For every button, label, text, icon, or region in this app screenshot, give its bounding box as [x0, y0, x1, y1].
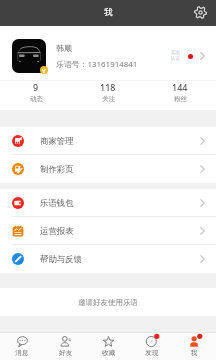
button[interactable]: 好友	[44, 332, 87, 360]
staticText: 帮助与反馈	[40, 254, 82, 265]
staticText: 制作彩页	[40, 164, 74, 175]
staticText: 9	[33, 81, 39, 93]
staticText: 实名	[171, 50, 181, 56]
staticText: 邀请好友使用乐语	[78, 298, 138, 307]
button[interactable]: V	[0, 26, 216, 80]
staticText: V	[42, 67, 46, 74]
staticText: 粉丝	[174, 95, 187, 103]
staticText: 118	[100, 81, 116, 93]
staticText: 144	[172, 81, 188, 93]
button[interactable]: 运营报表	[0, 217, 216, 245]
button[interactable]: 帮助与反馈	[0, 245, 216, 273]
staticText: 认证	[171, 56, 181, 62]
button[interactable]: 乐语钱包	[0, 189, 216, 217]
staticText: 发现	[145, 349, 159, 357]
staticText: 韩顺	[56, 43, 72, 53]
button[interactable]: 144	[144, 81, 216, 110]
button[interactable]: 邀请好友使用乐语	[0, 288, 216, 316]
button[interactable]: 消息	[0, 332, 44, 360]
staticText: 收藏	[102, 349, 116, 357]
button[interactable]: 118	[72, 81, 144, 110]
staticText: 消息	[15, 349, 29, 357]
staticText: 好友	[59, 349, 73, 357]
button[interactable]: 我	[173, 332, 216, 360]
staticText: 动态	[30, 95, 43, 103]
staticText: 商家管理	[40, 136, 74, 147]
staticText: 乐语号：13161914841	[56, 59, 138, 70]
button[interactable]: 发现	[130, 332, 173, 360]
staticText: 我	[191, 349, 198, 357]
staticText: 我	[104, 7, 113, 18]
button[interactable]: 制作彩页	[0, 155, 216, 183]
button[interactable]: 商家管理	[0, 127, 216, 155]
staticText: 关注	[102, 95, 115, 103]
button[interactable]: 收藏	[87, 332, 130, 360]
button[interactable]: Settings	[190, 2, 210, 22]
staticText: 乐语钱包	[40, 198, 74, 209]
staticText: 运营报表	[40, 226, 74, 237]
button[interactable]: 9	[0, 81, 72, 110]
